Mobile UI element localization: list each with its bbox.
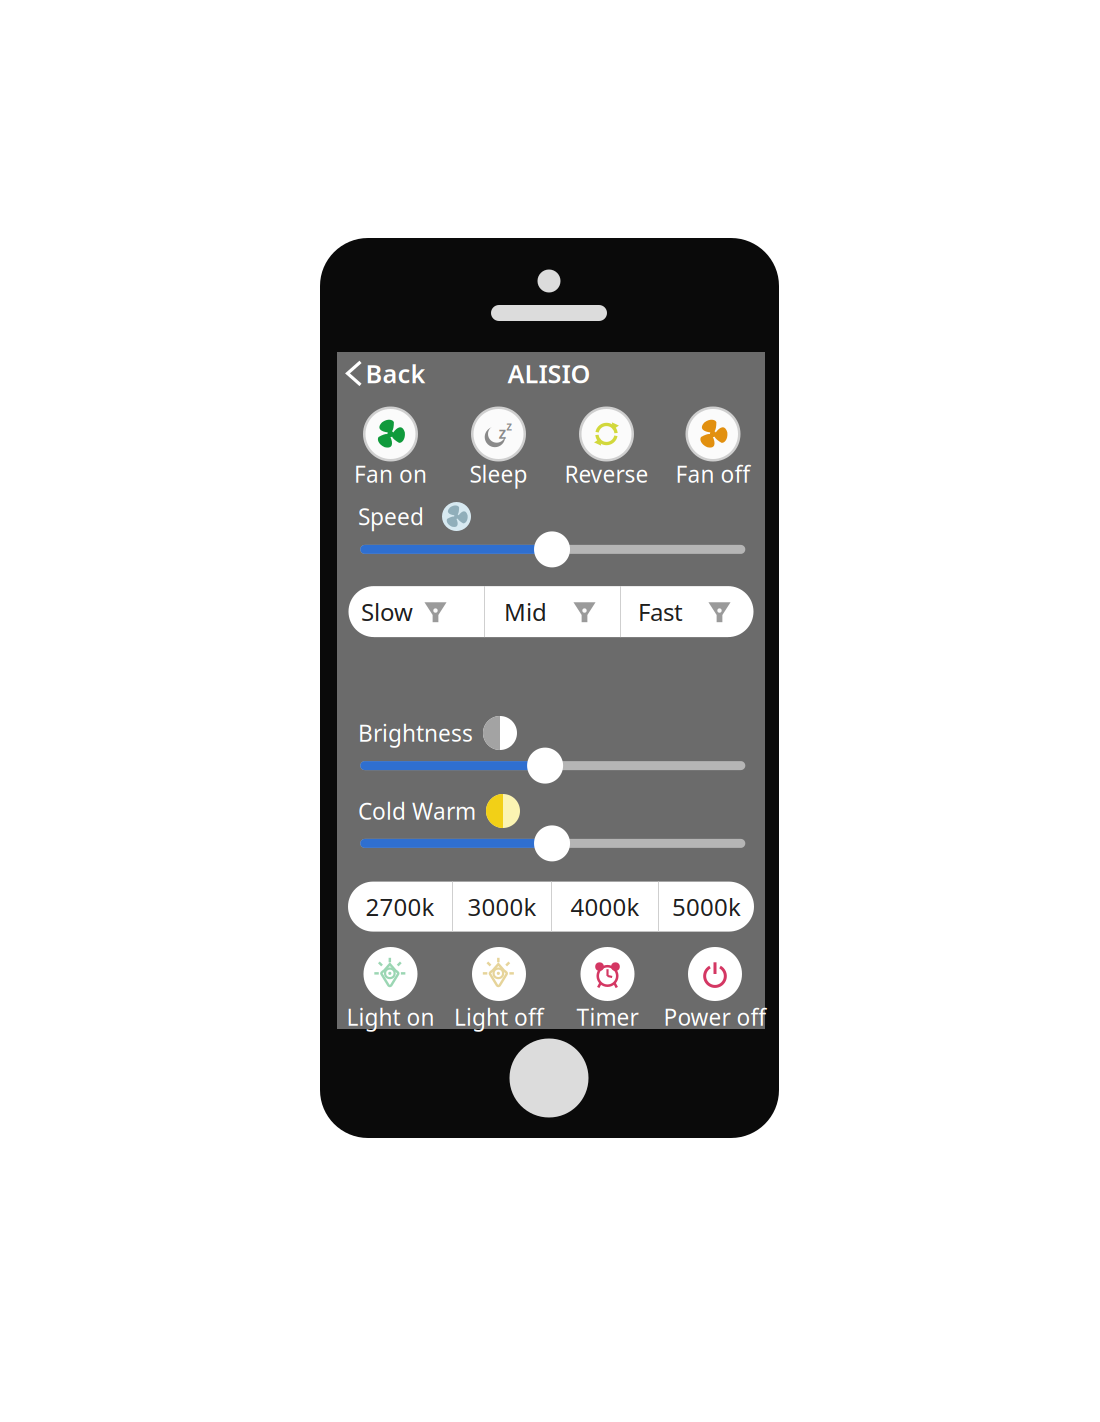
staticText: Sleep (469, 459, 527, 489)
button[interactable]: Light on (337, 947, 444, 1030)
button[interactable]: Fan on (337, 406, 444, 487)
staticText: Light on (346, 1002, 434, 1032)
staticText: Fan on (354, 459, 427, 489)
staticText: Fast (638, 596, 683, 628)
staticText: 5000k (672, 891, 741, 923)
staticText: z (506, 418, 512, 434)
staticText: 4000k (570, 891, 639, 923)
staticText: z (499, 422, 507, 443)
button[interactable]: Reverse (553, 406, 660, 487)
staticText: ALISIO (507, 357, 590, 390)
button[interactable]: Mid (485, 586, 620, 637)
button[interactable]: Fan off (659, 406, 766, 487)
staticText: Light off (454, 1002, 544, 1032)
button[interactable]: Light off (445, 947, 552, 1030)
button[interactable]: z (445, 406, 552, 487)
staticText: Brightness (358, 718, 473, 748)
button[interactable]: Timer (554, 947, 661, 1030)
button[interactable]: 5000k (659, 882, 754, 932)
staticText: Speed (358, 501, 424, 531)
staticText: 2700k (365, 891, 434, 923)
button[interactable]: Power off (661, 947, 768, 1030)
button[interactable]: 2700k (348, 882, 452, 932)
staticText: Timer (576, 1002, 638, 1032)
staticText: Reverse (564, 459, 648, 489)
staticText: Mid (504, 596, 547, 628)
staticText: Power off (663, 1002, 766, 1032)
staticText: Back (365, 357, 425, 390)
staticText: Cold Warm (358, 796, 476, 826)
staticText: Fan off (675, 459, 750, 489)
button[interactable]: Slow (348, 586, 484, 637)
button[interactable]: 3000k (453, 882, 551, 932)
button[interactable]: 4000k (552, 882, 658, 932)
button[interactable]: Fast (621, 586, 754, 637)
staticText: Slow (361, 596, 413, 628)
staticText: 3000k (467, 891, 536, 923)
button[interactable]: Back (339, 352, 430, 395)
